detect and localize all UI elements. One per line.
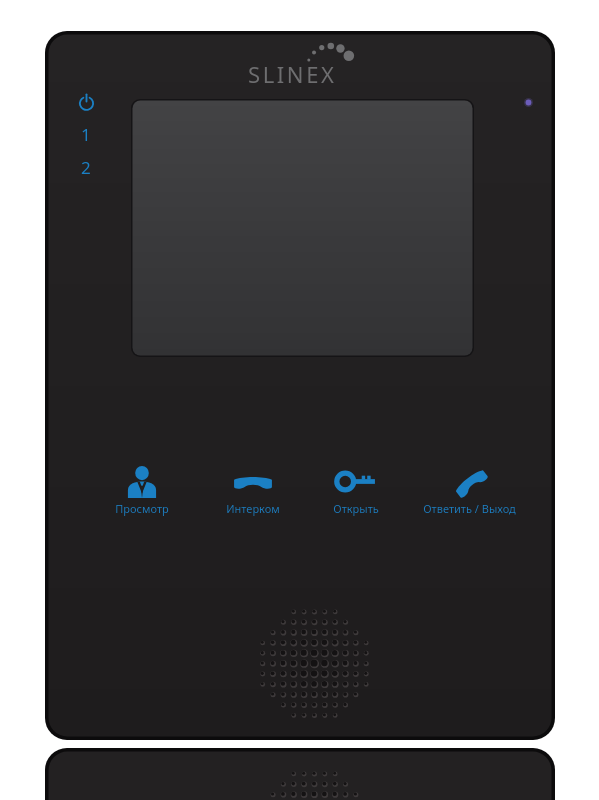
button[interactable]: Открыть xyxy=(299,465,413,529)
staticText: Просмотр xyxy=(115,501,169,516)
button[interactable]: Power xyxy=(71,87,101,117)
staticText: SLINEX xyxy=(248,59,337,89)
staticText: Интерком xyxy=(226,501,280,516)
button[interactable]: Ответить / Выход xyxy=(412,465,526,529)
staticText: Открыть xyxy=(333,501,379,516)
staticText: 1 xyxy=(81,123,91,146)
button[interactable]: 2 xyxy=(71,152,101,182)
staticText: 2 xyxy=(81,156,91,179)
button[interactable]: Интерком xyxy=(196,465,310,529)
button[interactable]: Просмотр xyxy=(85,465,199,529)
staticText: Ответить / Выход xyxy=(423,501,516,516)
button[interactable]: 1 xyxy=(71,119,101,149)
